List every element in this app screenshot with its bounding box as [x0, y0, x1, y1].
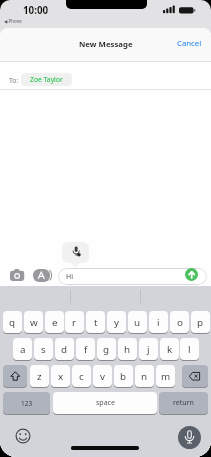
button[interactable]: j: [139, 338, 158, 360]
button[interactable]: p: [191, 311, 210, 333]
button[interactable]: f: [76, 338, 95, 360]
staticText: 10:00: [23, 4, 49, 17]
button[interactable]: h: [118, 338, 137, 360]
staticText: u: [134, 316, 141, 329]
staticText: space: [96, 398, 115, 408]
staticText: Zoe Taylor: [30, 75, 63, 84]
staticText: n: [141, 370, 148, 383]
staticText: s: [41, 343, 46, 356]
staticText: k: [167, 343, 173, 356]
button[interactable]: y: [107, 311, 126, 333]
button[interactable]: [182, 365, 208, 387]
staticText: i: [157, 316, 160, 329]
staticText: j: [147, 343, 150, 356]
staticText: g: [103, 343, 110, 356]
staticText: m: [161, 370, 171, 383]
staticText: p: [197, 316, 204, 329]
button[interactable]: l: [180, 338, 199, 360]
button[interactable]: Zoe Taylor: [21, 73, 72, 86]
button[interactable]: z: [30, 365, 49, 387]
staticText: d: [61, 343, 68, 356]
button[interactable]: [178, 426, 201, 449]
button[interactable]: t: [86, 311, 105, 333]
button[interactable]: a: [13, 338, 32, 360]
staticText: e: [52, 316, 58, 329]
staticText: o: [177, 316, 183, 329]
staticText: return: [173, 398, 194, 408]
button[interactable]: 123: [3, 392, 50, 414]
staticText: w: [30, 316, 38, 329]
staticText: t: [94, 316, 98, 329]
button[interactable]: Cancel: [177, 38, 202, 49]
staticText: a: [20, 343, 26, 356]
staticText: y: [114, 316, 119, 329]
button[interactable]: [10, 269, 25, 282]
staticText: ◀ Phone: [4, 18, 22, 24]
staticText: l: [188, 343, 191, 356]
staticText: x: [58, 370, 64, 383]
button[interactable]: v: [93, 365, 112, 387]
button[interactable]: [15, 428, 31, 444]
button[interactable]: return: [159, 392, 208, 414]
button[interactable]: e: [45, 311, 64, 333]
staticText: To:: [9, 76, 19, 85]
button[interactable]: d: [55, 338, 74, 360]
button[interactable]: u: [128, 311, 147, 333]
staticText: b: [120, 370, 127, 383]
button[interactable]: b: [114, 365, 133, 387]
button[interactable]: w: [24, 311, 43, 333]
button[interactable]: i: [149, 311, 168, 333]
button[interactable]: c: [72, 365, 91, 387]
button[interactable]: g: [97, 338, 116, 360]
button[interactable]: k: [160, 338, 179, 360]
button[interactable]: [3, 365, 27, 387]
button[interactable]: m: [156, 365, 175, 387]
staticText: h: [124, 343, 131, 356]
button[interactable]: [33, 269, 50, 282]
staticText: New Message: [79, 39, 133, 50]
button[interactable]: q: [3, 311, 22, 333]
button[interactable]: r: [65, 311, 84, 333]
button[interactable]: n: [135, 365, 154, 387]
button[interactable]: o: [170, 311, 189, 333]
staticText: Hi: [66, 272, 73, 282]
button[interactable]: x: [51, 365, 70, 387]
staticText: c: [79, 370, 84, 383]
button[interactable]: s: [34, 338, 53, 360]
staticText: r: [72, 316, 77, 329]
staticText: v: [100, 370, 105, 383]
staticText: q: [9, 316, 16, 329]
staticText: 123: [21, 399, 33, 408]
button[interactable]: [185, 268, 198, 281]
staticText: f: [84, 343, 88, 356]
button[interactable]: space: [53, 392, 157, 414]
staticText: z: [37, 370, 42, 383]
